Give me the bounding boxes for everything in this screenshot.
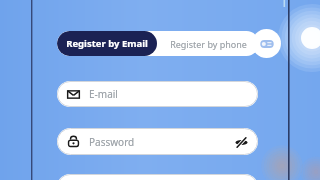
button[interactable]: E-mail — [57, 81, 258, 107]
button[interactable] — [57, 174, 258, 180]
button[interactable]: Register by Email — [57, 31, 157, 56]
button[interactable]: Accessibility — [252, 29, 281, 58]
staticText: E-mail — [89, 87, 118, 101]
staticText: Password — [89, 135, 135, 149]
button[interactable]: Register by phone — [157, 31, 259, 56]
button[interactable]: Password — [57, 128, 258, 155]
button[interactable]: Show password — [230, 131, 252, 153]
staticText: Register by phone — [170, 38, 247, 50]
staticText: Register by Email — [66, 37, 148, 50]
